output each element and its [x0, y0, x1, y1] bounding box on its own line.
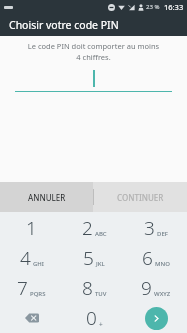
- button[interactable]: 4: [0, 243, 63, 273]
- button[interactable]: 6: [125, 243, 187, 273]
- button[interactable]: 0: [63, 303, 125, 333]
- button[interactable]: Backspace: [0, 303, 63, 333]
- staticText: CONTINUER: [117, 192, 164, 203]
- staticText: PQRS: [30, 290, 46, 298]
- button[interactable]: 2: [63, 212, 125, 243]
- button[interactable]: CONTINUER: [94, 182, 187, 212]
- staticText: 0: [86, 305, 97, 331]
- button[interactable]: ANNULER: [0, 182, 93, 212]
- staticText: Le code PIN doit comporter au moins 4 ch…: [0, 41, 187, 62]
- staticText: Choisir votre code PIN: [9, 18, 119, 32]
- staticText: 5: [83, 245, 94, 271]
- staticText: 16:33: [164, 2, 184, 12]
- staticText: GHI: [33, 260, 44, 268]
- staticText: DEF: [157, 230, 168, 238]
- button[interactable]: 5: [63, 243, 125, 273]
- staticText: TUV: [95, 290, 107, 298]
- staticText: JKL: [96, 260, 105, 268]
- staticText: ABC: [95, 230, 107, 238]
- staticText: 9: [141, 275, 152, 301]
- staticText: 1: [26, 215, 37, 241]
- staticText: 8: [82, 275, 93, 301]
- staticText: 3: [144, 215, 155, 241]
- staticText: 23 %: [146, 3, 160, 11]
- staticText: 2: [82, 215, 93, 241]
- staticText: WXYZ: [154, 290, 171, 298]
- button[interactable]: 7: [0, 273, 63, 303]
- button[interactable]: 9: [125, 273, 187, 303]
- staticText: 6: [142, 245, 153, 271]
- button[interactable]: Continue: [145, 307, 168, 330]
- button[interactable]: 3: [125, 212, 187, 243]
- staticText: 4: [20, 245, 31, 271]
- staticText: MNO: [155, 260, 170, 268]
- button[interactable]: 8: [63, 273, 125, 303]
- staticText: ANNULER: [28, 192, 66, 203]
- staticText: +: [99, 320, 103, 329]
- staticText: 7: [17, 275, 28, 301]
- button[interactable]: 1: [0, 212, 63, 243]
